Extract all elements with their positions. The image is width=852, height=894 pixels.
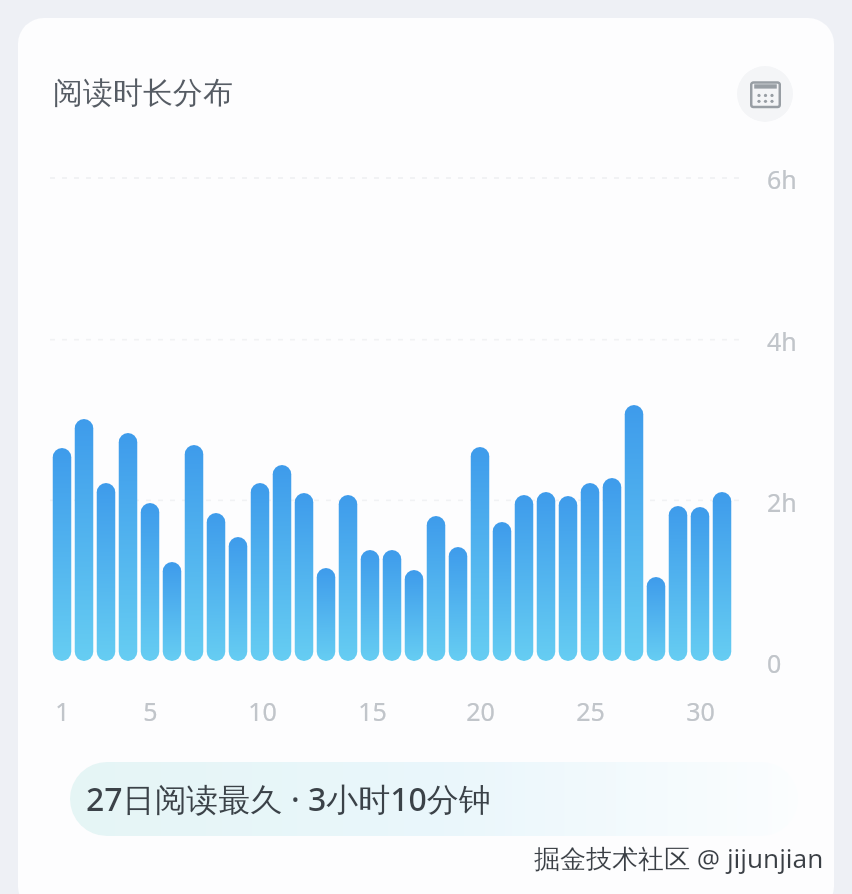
- staticText: 30: [686, 694, 715, 726]
- staticText: 1: [55, 694, 70, 726]
- button[interactable]: 27日阅读最久 · 3小时10分钟: [70, 762, 798, 836]
- staticText: 20: [466, 694, 495, 726]
- staticText: 27日阅读最久 · 3小时10分钟: [86, 777, 491, 821]
- staticText: 4h: [767, 324, 797, 358]
- staticText: 5: [143, 694, 158, 726]
- staticText: 10: [248, 694, 277, 726]
- staticText: 6h: [767, 162, 797, 196]
- button[interactable]: Select date: [737, 66, 793, 122]
- staticText: 25: [576, 694, 605, 726]
- staticText: 阅读时长分布: [53, 74, 233, 112]
- staticText: 2h: [767, 485, 797, 519]
- staticText: 0: [767, 646, 782, 680]
- staticText: 15: [358, 694, 387, 726]
- staticText: 掘金技术社区 @ jijunjian: [534, 840, 824, 876]
